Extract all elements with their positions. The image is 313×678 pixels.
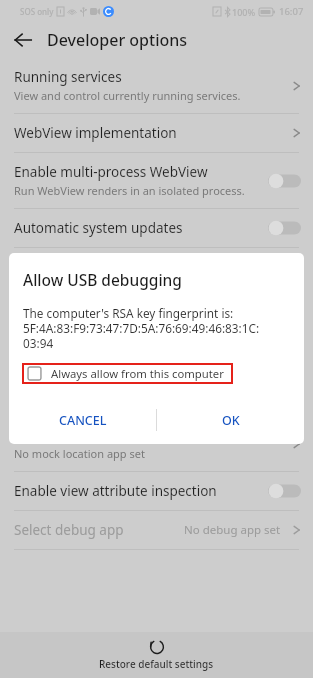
button[interactable]: Automatic system updates: [0, 209, 313, 247]
staticText: Bug report shortcut: [14, 258, 140, 276]
button[interactable]: CANCEL: [9, 400, 156, 440]
staticText: 16:07: [279, 5, 304, 18]
button[interactable]: Back: [7, 24, 39, 56]
staticText: Restore default settings: [99, 657, 214, 671]
staticText: Select debug app: [14, 521, 124, 539]
button[interactable]: WebView implementation: [0, 114, 313, 152]
staticText: No mock location app set: [14, 446, 145, 461]
staticText: MTP (Media Transfer Protocol): [14, 334, 170, 349]
button[interactable]: Select USB Configuration: [0, 304, 313, 359]
staticText: Automatic system updates: [14, 219, 183, 237]
button[interactable]: OK: [157, 400, 304, 440]
button[interactable]: Select debug app: [0, 511, 313, 549]
staticText: Always allow from this computer: [51, 366, 224, 381]
button[interactable]: Running services: [0, 58, 313, 113]
button[interactable]: Enable multi-process WebView: [0, 153, 313, 208]
staticText: 100%: [232, 6, 256, 18]
button[interactable]: Enable view attribute inspection: [0, 472, 313, 510]
staticText: View and control currently running servi…: [14, 88, 241, 103]
button[interactable]: Allow ADB debugging in charge only mode: [0, 360, 313, 415]
staticText: Allow USB debugging: [23, 269, 182, 290]
staticText: Enable view attribute inspection: [14, 482, 217, 500]
staticText: SOS only: [20, 6, 54, 17]
staticText: Select USB Configuration: [14, 314, 173, 332]
staticText: Allow ADB debugging in charge only mode: [14, 370, 260, 405]
staticText: CANCEL: [59, 412, 107, 429]
staticText: The computer's RSA key fingerprint is: 5…: [23, 305, 260, 352]
staticText: Show a button in the power menu: [14, 278, 190, 293]
button[interactable]: Bug report shortcut: [0, 248, 313, 303]
staticText: OK: [222, 412, 240, 429]
button[interactable]: Restore default settings: [0, 632, 313, 678]
button[interactable]: Select mock location app: [0, 416, 313, 471]
staticText: Running services: [14, 68, 122, 86]
staticText: Enable multi-process WebView: [14, 163, 208, 181]
staticText: Developer options: [47, 29, 188, 51]
button[interactable]: Always allow from this computer: [22, 363, 233, 384]
staticText: Run WebView renders in an isolated proce…: [14, 183, 245, 198]
staticText: No debug app set: [184, 522, 281, 538]
staticText: WebView implementation: [14, 124, 177, 142]
